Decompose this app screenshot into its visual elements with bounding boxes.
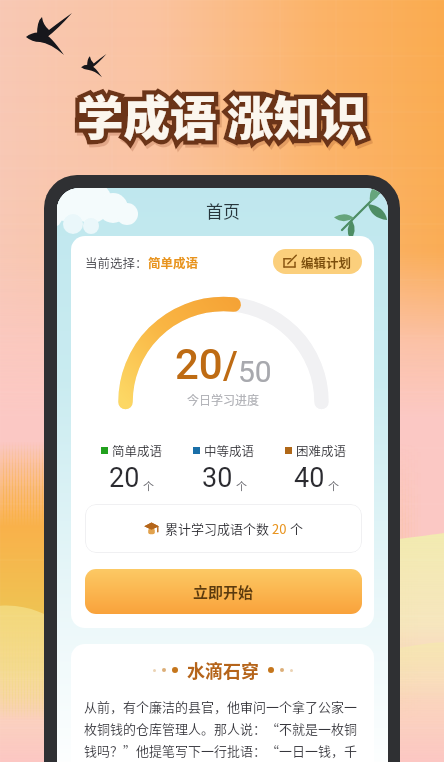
staticText: 20 [109, 462, 140, 494]
staticText: 个 [236, 478, 247, 494]
staticText: 简单成语 [112, 441, 163, 459]
staticText: 个 [287, 519, 303, 538]
staticText: 学成语 涨知识 [77, 81, 367, 148]
staticText: 学成语 涨知识 [79, 84, 369, 151]
staticText: 50 [238, 354, 272, 389]
staticText: 个 [328, 478, 339, 494]
staticText: 水滴石穿 [187, 657, 259, 683]
staticText: 累计学习成语个数 [165, 519, 272, 538]
staticText: 困难成语 [296, 441, 347, 459]
staticText: 20 [272, 519, 287, 538]
button[interactable]: 累计学习成语个数 [85, 504, 362, 553]
staticText: 20 [175, 340, 223, 389]
staticText: 今日学习进度 [187, 391, 260, 408]
button[interactable]: 立即开始 [85, 569, 362, 614]
button[interactable]: 中等成语 [178, 441, 270, 494]
staticText: 个 [143, 478, 154, 494]
staticText: 首页 [206, 198, 240, 223]
staticText: 简单成语 [148, 253, 199, 271]
staticText: 学成语 涨知识 [77, 81, 367, 148]
staticText: 当前选择： [85, 253, 148, 271]
button[interactable]: 编辑计划 [273, 249, 362, 274]
staticText: 30 [202, 462, 233, 494]
staticText: 中等成语 [204, 441, 255, 459]
staticText: 40 [294, 462, 325, 494]
staticText: 从前，有个廉洁的县官，他审问一个拿了公家一枚铜钱的仓库管理人。那人说：“不就是一… [84, 697, 361, 762]
button[interactable]: 困难成语 [270, 441, 362, 494]
staticText: / [223, 344, 238, 389]
button[interactable]: 简单成语 [85, 441, 178, 494]
staticText: 立即开始 [193, 581, 254, 603]
staticText: 编辑计划 [301, 253, 352, 271]
